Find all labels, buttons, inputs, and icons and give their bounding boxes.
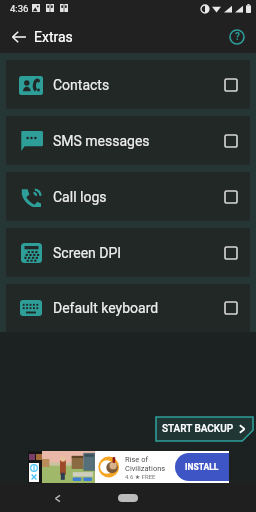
button[interactable]: SMS messages (6, 116, 250, 165)
staticText: SMS messages (53, 133, 150, 149)
button[interactable]: Back (45, 486, 69, 510)
staticText: START BACKUP (162, 423, 234, 435)
button[interactable]: Call logs (6, 172, 250, 221)
staticText: Rise of (125, 455, 149, 464)
button[interactable]: Contacts (6, 60, 250, 109)
button[interactable]: Back (6, 24, 32, 50)
button[interactable]: START BACKUP (156, 417, 253, 441)
staticText: Civilizations (125, 464, 166, 473)
button[interactable]: INSTALL (175, 453, 229, 481)
staticText: ? (235, 31, 240, 43)
button[interactable]: Screen DPI (6, 228, 250, 277)
staticText: Call logs (53, 189, 107, 205)
staticText: 4:36 (10, 3, 29, 14)
staticText: Default keyboard (53, 300, 159, 316)
staticText: Contacts (53, 77, 110, 93)
staticText: INSTALL (185, 462, 219, 472)
button[interactable]: Home (118, 494, 138, 502)
staticText: 4.6 ★ FREE (125, 473, 156, 480)
staticText: Extras (34, 29, 73, 45)
staticText: Screen DPI (53, 245, 122, 261)
button[interactable]: Default keyboard (6, 284, 250, 332)
button[interactable]: Help (224, 24, 250, 50)
